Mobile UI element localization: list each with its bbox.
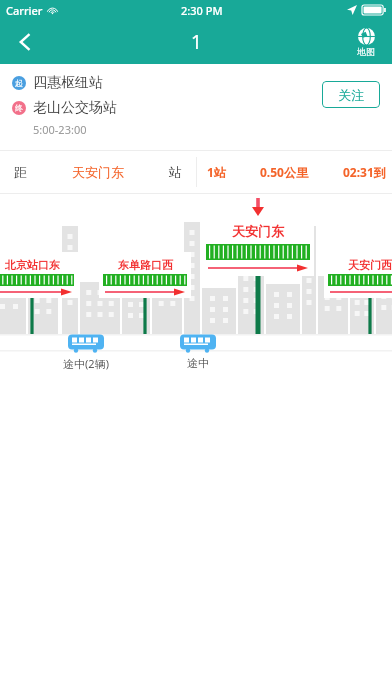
staticText: 起 <box>15 78 23 88</box>
staticText: 途中 <box>187 356 209 370</box>
button[interactable]: Back <box>0 20 52 64</box>
staticText: 1 <box>191 29 202 55</box>
staticText: 地图 <box>357 46 375 57</box>
staticText: 关注 <box>338 87 364 103</box>
button[interactable]: 天安门西 <box>324 256 392 273</box>
staticText: 四惠枢纽站 <box>33 74 103 92</box>
button[interactable]: 关注 <box>322 81 380 108</box>
button[interactable]: 东单路口西 <box>99 256 191 273</box>
button[interactable]: 距 <box>0 150 196 194</box>
button[interactable]: 1站 <box>197 150 392 194</box>
staticText: 老山公交场站 <box>33 99 117 117</box>
staticText: Carrier <box>6 3 43 18</box>
staticText: 途中(2辆) <box>63 356 109 371</box>
staticText: 02:31到 <box>343 164 386 180</box>
staticText: 天安门西 <box>348 258 392 272</box>
button[interactable]: 天安门东 <box>202 220 314 242</box>
staticText: 5:00-23:00 <box>33 122 87 137</box>
staticText: 天安门东 <box>232 223 284 239</box>
staticText: 北京站口东 <box>5 258 60 272</box>
staticText: 终 <box>15 103 23 113</box>
button[interactable]: 地图 <box>340 20 392 64</box>
staticText: 距 <box>14 164 27 180</box>
staticText: 0.50公里 <box>260 164 308 180</box>
staticText: 站 <box>169 164 182 180</box>
staticText: 2:30 PM <box>181 3 223 18</box>
button[interactable]: 北京站口东 <box>0 256 78 273</box>
staticText: 天安门东 <box>72 164 124 180</box>
staticText: 1站 <box>207 164 226 180</box>
staticText: 东单路口西 <box>118 258 173 272</box>
